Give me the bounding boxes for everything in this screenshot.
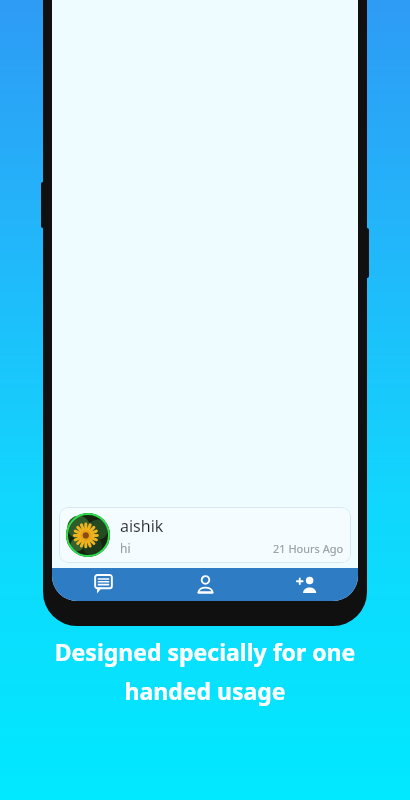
button[interactable]: Add contact — [256, 568, 358, 601]
button[interactable]: Contacts — [154, 568, 256, 601]
staticText: Designed specially for one handed usage — [18, 636, 392, 707]
staticText: 21 Hours Ago — [273, 541, 344, 556]
staticText: aishik — [120, 515, 164, 537]
button[interactable]: Messages — [52, 568, 154, 601]
staticText: hi — [120, 540, 131, 556]
button[interactable]: aishik — [59, 507, 351, 563]
